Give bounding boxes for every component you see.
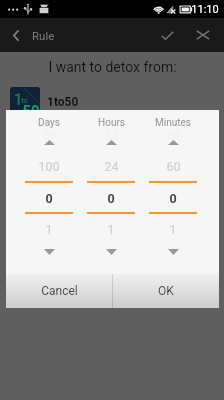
staticText: 50 [22,102,40,117]
staticText: Cancel [41,284,78,298]
staticText: 99 [42,127,57,142]
button[interactable]: OK [113,274,219,308]
staticText: 100 [38,159,60,174]
staticText: Minutes [155,117,191,129]
staticText: 1 [107,222,115,237]
staticText: 59 [166,127,181,142]
staticText: 1 [45,222,53,237]
staticText: 0 [169,191,177,206]
button[interactable]: Cancel [184,18,222,52]
button[interactable]: Confirm [148,18,186,52]
staticText: 1 [169,222,177,237]
button[interactable]: 1 [0,82,224,122]
staticText: I want to detox from: [48,59,177,75]
button[interactable]: Back [0,18,32,52]
button[interactable]: Decrease Minutes [142,243,204,260]
staticText: 0 [45,191,53,206]
staticText: Days [38,117,60,129]
staticText: 24 [104,159,119,174]
staticText: 1to50 [47,95,79,109]
staticText: 60 [166,159,181,174]
staticText: Rule [32,29,55,42]
button[interactable]: Increase Minutes [142,134,204,151]
staticText: 11:10 [191,3,219,16]
staticText: 1 [13,90,23,109]
button[interactable]: Decrease Days [18,243,80,260]
button[interactable]: Increase Days [18,134,80,151]
staticText: 0 [107,191,115,206]
staticText: OK [158,284,174,298]
button[interactable]: Increase Hours [80,134,142,151]
staticText: 23 [104,127,119,142]
staticText: Hours [98,117,125,129]
button[interactable]: Decrease Hours [80,243,142,260]
staticText: to [21,96,28,105]
button[interactable]: Cancel [6,274,112,308]
